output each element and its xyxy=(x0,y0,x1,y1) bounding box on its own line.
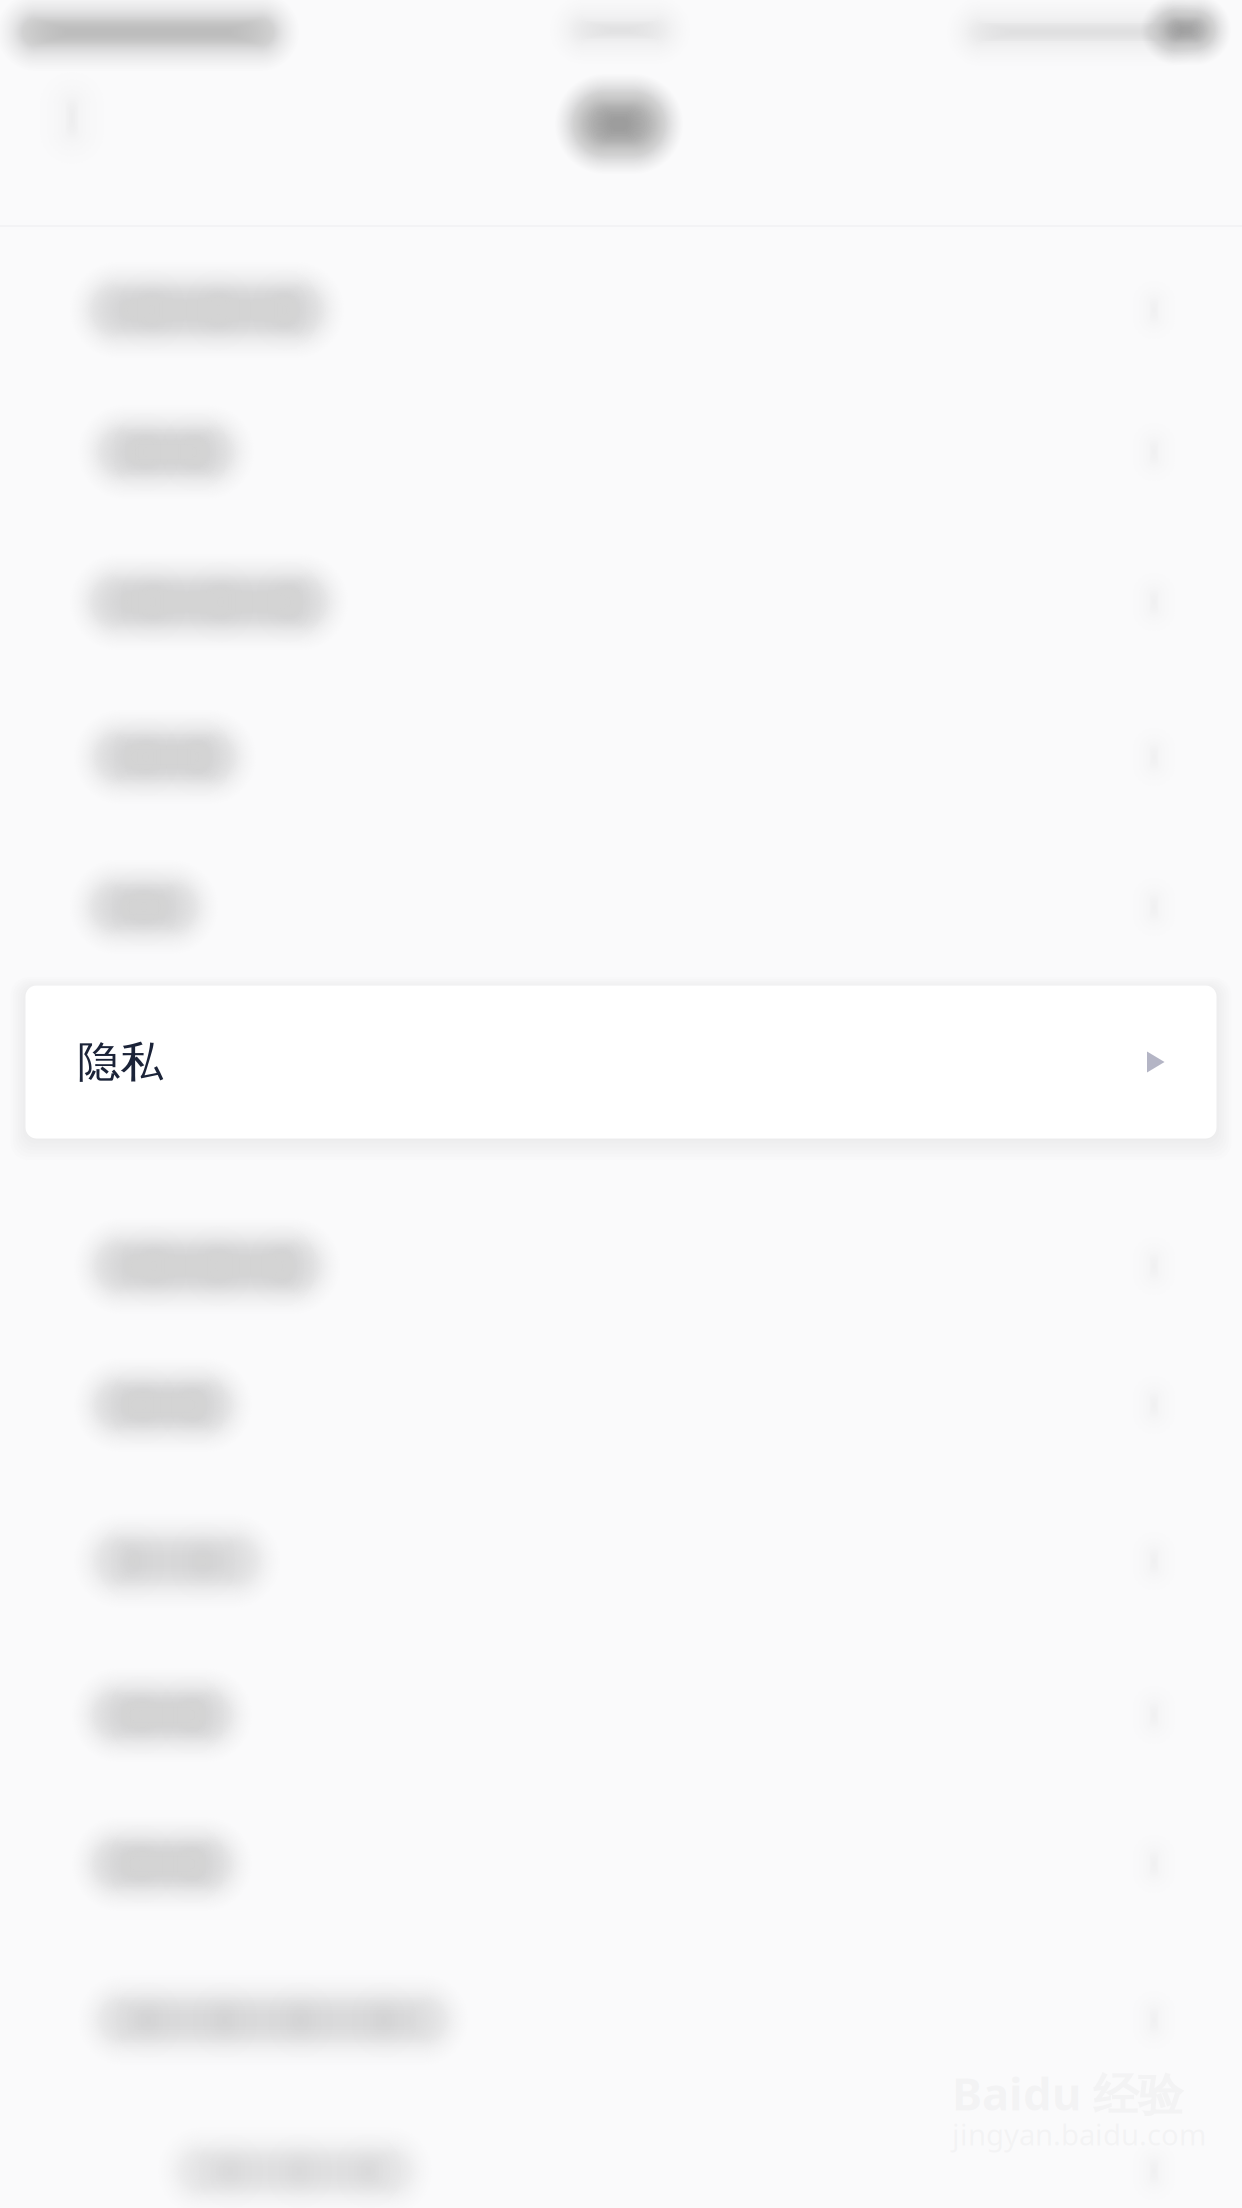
staticText: Baidu 经验 xyxy=(952,2063,1183,2123)
staticText: 隐私 xyxy=(77,1036,163,1088)
button[interactable]: 隐私 xyxy=(25,985,1216,1138)
